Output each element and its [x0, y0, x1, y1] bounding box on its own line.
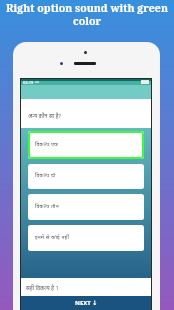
button[interactable]: विकल्प एक	[28, 131, 144, 159]
staticText: विकल्प दो	[35, 171, 56, 178]
staticText: NEXT ↓	[75, 299, 98, 307]
staticText: 02:19	[23, 80, 34, 85]
button[interactable]: NEXT ↓	[21, 296, 151, 310]
staticText: Right option sound with green color	[0, 1, 174, 28]
staticText: अन्य कौन सा है?	[28, 112, 62, 120]
staticText: सही विकल्प है 1	[26, 284, 59, 291]
button[interactable]: विकल्प तीन	[28, 194, 144, 220]
staticText: इनमें से कोई नहीं	[35, 233, 69, 240]
button[interactable]: विकल्प दो	[28, 164, 144, 189]
staticText: विकल्प एक	[35, 140, 59, 147]
button[interactable]: इनमें से कोई नहीं	[28, 225, 144, 251]
staticText: विकल्प तीन	[35, 202, 59, 209]
